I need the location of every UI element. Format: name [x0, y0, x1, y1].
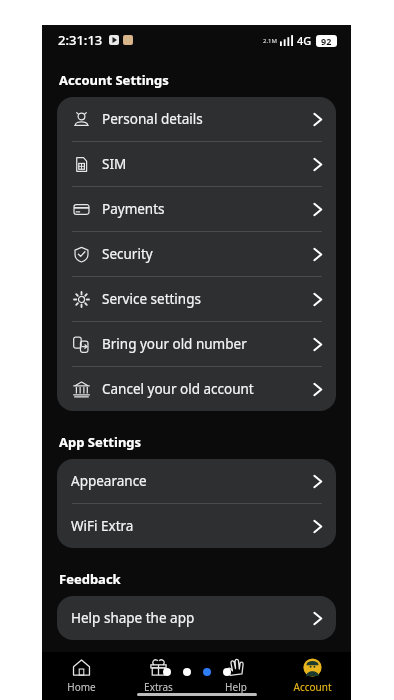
button[interactable]: Help	[197, 652, 274, 700]
staticText: Help	[225, 680, 247, 694]
staticText: Home	[67, 680, 96, 694]
staticText: Cancel your old account	[102, 380, 254, 398]
button[interactable]: SIM	[57, 142, 336, 186]
button[interactable]: Personal details	[57, 97, 336, 141]
staticText: Extras	[144, 680, 173, 694]
staticText: Security	[102, 245, 153, 263]
staticText: Payments	[102, 200, 165, 218]
staticText: 92	[321, 35, 332, 47]
button[interactable]: Account	[274, 652, 351, 700]
button[interactable]: Appearance	[57, 459, 336, 503]
staticText: SIM	[102, 155, 127, 173]
button[interactable]: Payments	[57, 187, 336, 231]
staticText: Account	[293, 680, 332, 694]
staticText: Help shape the app	[71, 609, 195, 627]
button[interactable]: Cancel your old account	[57, 367, 336, 411]
staticText: Personal details	[102, 110, 203, 128]
button[interactable]: Extras	[120, 652, 197, 700]
staticText: Service settings	[102, 290, 201, 308]
button[interactable]: Home	[42, 652, 120, 700]
button[interactable]: Security	[57, 232, 336, 276]
button[interactable]: Service settings	[57, 277, 336, 321]
button[interactable]: WiFi Extra	[57, 504, 336, 548]
staticText: App Settings	[59, 433, 142, 451]
button[interactable]: Bring your old number	[57, 322, 336, 366]
staticText: About	[59, 660, 99, 678]
staticText: 2:31:13	[58, 31, 103, 49]
staticText: 2.1M	[263, 37, 277, 45]
staticText: Appearance	[71, 472, 147, 490]
staticText: WiFi Extra	[71, 517, 134, 535]
staticText: Bring your old number	[102, 335, 247, 353]
staticText: Feedback	[59, 570, 121, 588]
button[interactable]: Help shape the app	[57, 596, 336, 640]
staticText: Account Settings	[59, 71, 169, 89]
staticText: 4G	[297, 33, 312, 48]
